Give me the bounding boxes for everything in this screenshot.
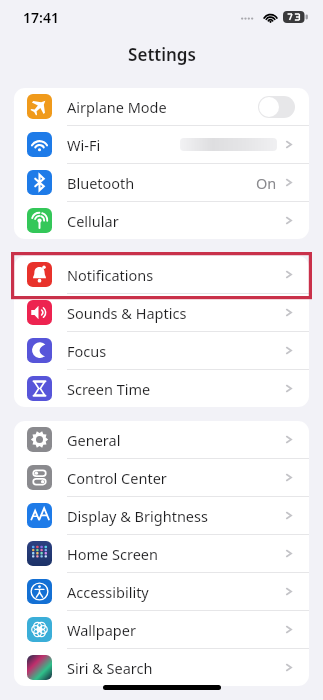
button[interactable]: Wi-Fi bbox=[14, 126, 309, 163]
staticText: Siri & Search bbox=[67, 658, 153, 678]
staticText: Cellular bbox=[67, 211, 119, 231]
button[interactable]: Control Center bbox=[14, 459, 309, 496]
staticText: Control Center bbox=[67, 468, 167, 488]
button[interactable]: Wallpaper bbox=[14, 611, 309, 648]
staticText: Home Screen bbox=[67, 544, 158, 564]
staticText: Screen Time bbox=[67, 379, 151, 399]
staticText: General bbox=[67, 430, 121, 450]
staticText: Wallpaper bbox=[67, 620, 136, 640]
staticText: Wi-Fi bbox=[67, 135, 101, 155]
button[interactable]: Accessibility bbox=[14, 573, 309, 610]
staticText: On bbox=[256, 173, 277, 193]
staticText: Display & Brightness bbox=[67, 506, 208, 526]
staticText: Bluetooth bbox=[67, 173, 135, 193]
staticText: Accessibility bbox=[67, 582, 149, 602]
button[interactable]: Focus bbox=[14, 332, 309, 369]
staticText: Notifications bbox=[67, 265, 154, 285]
button[interactable]: General bbox=[14, 421, 309, 458]
button[interactable]: Home Screen bbox=[14, 535, 309, 572]
staticText: Sounds & Haptics bbox=[67, 303, 187, 323]
staticText: Settings bbox=[128, 43, 196, 66]
button[interactable]: Cellular bbox=[14, 202, 309, 239]
button[interactable]: Display & Brightness bbox=[14, 497, 309, 534]
button[interactable]: Sounds & Haptics bbox=[14, 294, 309, 331]
button[interactable]: Siri & Search bbox=[14, 649, 309, 686]
button[interactable]: Notifications bbox=[14, 256, 309, 293]
button[interactable]: Bluetooth bbox=[14, 164, 309, 201]
button[interactable]: Screen Time bbox=[14, 370, 309, 407]
button[interactable]: Airplane Mode bbox=[14, 88, 309, 125]
staticText: Focus bbox=[67, 341, 107, 361]
staticText: Airplane Mode bbox=[67, 97, 167, 117]
button[interactable]: Airplane Mode toggle, off bbox=[258, 96, 295, 118]
staticText: 17:41 bbox=[23, 8, 59, 27]
